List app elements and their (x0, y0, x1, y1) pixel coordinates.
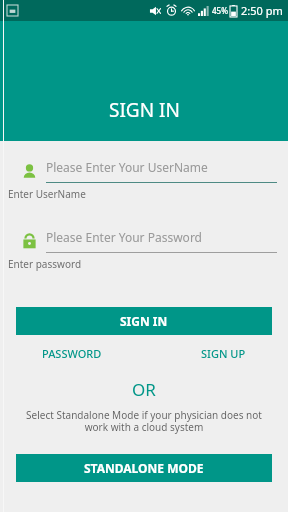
staticText: Enter password (8, 257, 82, 271)
button[interactable]: Please Enter Your UserName (0, 159, 288, 183)
button[interactable]: PASSWORD (40, 343, 104, 364)
staticText: Select Standalone Mode if your physician… (16, 408, 272, 434)
button[interactable]: Please Enter Your Password (0, 229, 288, 253)
staticText: PASSWORD (42, 346, 102, 361)
staticText: 45% (212, 5, 228, 16)
staticText: Please Enter Your UserName (46, 159, 208, 175)
staticText: OR (0, 378, 288, 401)
staticText: SIGN IN (109, 97, 180, 123)
button[interactable]: STANDALONE MODE (16, 454, 272, 482)
button[interactable]: SIGN IN (16, 307, 272, 335)
staticText: STANDALONE MODE (84, 460, 204, 476)
staticText: 2:50 pm (241, 3, 283, 18)
button[interactable]: SIGN UP (199, 343, 248, 364)
staticText: Please Enter Your Password (46, 229, 202, 245)
staticText: SIGN IN (120, 313, 168, 329)
staticText: SIGN UP (201, 346, 246, 361)
staticText: Enter UserName (8, 187, 86, 201)
